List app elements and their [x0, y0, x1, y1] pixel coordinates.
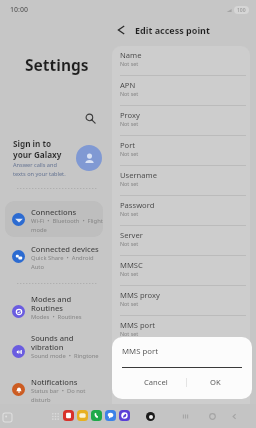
staticText: Not set — [120, 270, 139, 277]
staticText: Not set — [120, 90, 139, 97]
button[interactable]: MMS port — [112, 316, 250, 346]
staticText: Sounds and vibration — [31, 333, 74, 352]
staticText: Password — [120, 200, 155, 210]
staticText: Not set — [120, 300, 139, 307]
button[interactable]: Server — [112, 226, 250, 256]
staticText: Settings — [25, 54, 89, 75]
button[interactable]: Navigate up — [113, 22, 129, 38]
staticText: 100 — [237, 7, 246, 14]
staticText: Notifications — [31, 377, 78, 387]
button[interactable]: App — [77, 410, 88, 421]
staticText: Cancel — [144, 377, 168, 387]
button[interactable]: App — [105, 410, 116, 421]
staticText: Not set — [120, 330, 139, 337]
button[interactable]: App — [119, 410, 130, 421]
staticText: APN — [120, 80, 136, 90]
button[interactable]: APN — [112, 76, 250, 106]
button[interactable]: Modes and Routines — [5, 294, 108, 321]
staticText: Sound mode • Ringtone — [31, 352, 99, 360]
staticText: Not set — [120, 60, 139, 67]
button[interactable]: Connections — [5, 207, 108, 233]
button[interactable]: Cancel — [112, 373, 186, 391]
button[interactable]: Username — [112, 166, 250, 196]
staticText: Sign in to your Galaxy — [13, 138, 62, 160]
button[interactable]: MMS proxy — [112, 286, 250, 316]
button[interactable]: Connected devices — [5, 244, 108, 270]
button[interactable]: Recents — [179, 410, 192, 423]
button[interactable]: App — [91, 410, 102, 421]
button[interactable]: Proxy — [112, 106, 250, 136]
button[interactable]: Sounds and vibration — [5, 333, 108, 360]
staticText: Status bar • Do not disturb — [31, 387, 86, 403]
staticText: Edit access point — [135, 24, 210, 36]
button[interactable]: Search — [82, 110, 98, 126]
button[interactable]: Home — [206, 410, 219, 423]
staticText: Not set — [120, 240, 139, 247]
staticText: MMS proxy — [120, 290, 160, 300]
staticText: Wi-Fi • Bluetooth • Flight mode — [31, 217, 103, 233]
button[interactable]: Password — [112, 196, 250, 226]
staticText: OK — [210, 377, 221, 387]
staticText: Port — [120, 140, 136, 150]
staticText: Quick Share • Android Auto — [31, 254, 94, 270]
staticText: Answer calls and texts on your tablet. — [13, 161, 66, 177]
staticText: Not set — [120, 180, 139, 187]
button[interactable]: Camera — [146, 412, 155, 421]
button[interactable]: App drawer — [1, 411, 13, 423]
staticText: 10:00 — [10, 5, 28, 15]
staticText: MMS port — [120, 320, 156, 330]
staticText: Name — [120, 50, 142, 60]
button[interactable]: Sign in to your Galaxy — [13, 138, 102, 177]
staticText: Not set — [120, 150, 139, 157]
staticText: Modes • Routines — [31, 313, 82, 321]
button[interactable]: Notifications — [5, 377, 108, 403]
staticText: Not set — [120, 210, 139, 217]
staticText: Connections — [31, 207, 77, 217]
staticText: Not set — [120, 120, 139, 127]
button[interactable]: Port — [112, 136, 250, 166]
button[interactable]: Name — [112, 46, 250, 76]
staticText: MMS port — [122, 346, 158, 357]
button[interactable]: App — [63, 410, 74, 421]
staticText: Server — [120, 230, 143, 240]
button[interactable]: Back — [228, 410, 241, 423]
button[interactable]: OK — [187, 373, 252, 391]
staticText: Connected devices — [31, 244, 99, 254]
button[interactable]: MMSC — [112, 256, 250, 286]
staticText: Proxy — [120, 110, 140, 120]
staticText: Modes and Routines — [31, 294, 72, 313]
staticText: Username — [120, 170, 157, 180]
staticText: MMSC — [120, 260, 143, 270]
